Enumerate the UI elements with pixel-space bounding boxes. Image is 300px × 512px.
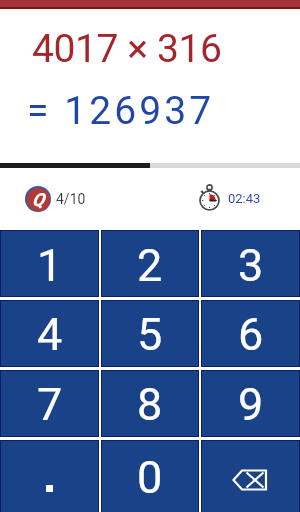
button[interactable]: 2 <box>102 231 198 296</box>
staticText: Q <box>32 189 45 210</box>
staticText: 4 <box>37 308 63 361</box>
button[interactable]: 8 <box>102 371 198 436</box>
staticText: 4017 × 316 <box>32 26 222 72</box>
staticText: 02:43 <box>228 191 261 206</box>
button[interactable] <box>202 441 299 512</box>
button[interactable]: 3 <box>202 231 299 296</box>
button[interactable] <box>1 441 98 512</box>
button[interactable]: 5 <box>102 301 198 366</box>
staticText: 9 <box>238 378 264 431</box>
staticText: 7 <box>37 378 63 431</box>
staticText: 0 <box>137 451 163 504</box>
staticText: 1 <box>37 239 63 292</box>
staticText: 8 <box>137 378 163 431</box>
button[interactable]: 6 <box>202 301 299 366</box>
button[interactable]: 1 <box>1 231 98 296</box>
staticText: 5 <box>137 308 163 361</box>
button[interactable]: 0 <box>102 441 198 512</box>
staticText: 4/10 <box>56 191 86 207</box>
staticText: = 126937 <box>27 88 215 134</box>
staticText: 6 <box>238 308 264 361</box>
button[interactable]: 9 <box>202 371 299 436</box>
button[interactable]: 7 <box>1 371 98 436</box>
staticText: 3 <box>238 239 264 292</box>
staticText: 2 <box>137 239 163 292</box>
button[interactable]: 4 <box>1 301 98 366</box>
